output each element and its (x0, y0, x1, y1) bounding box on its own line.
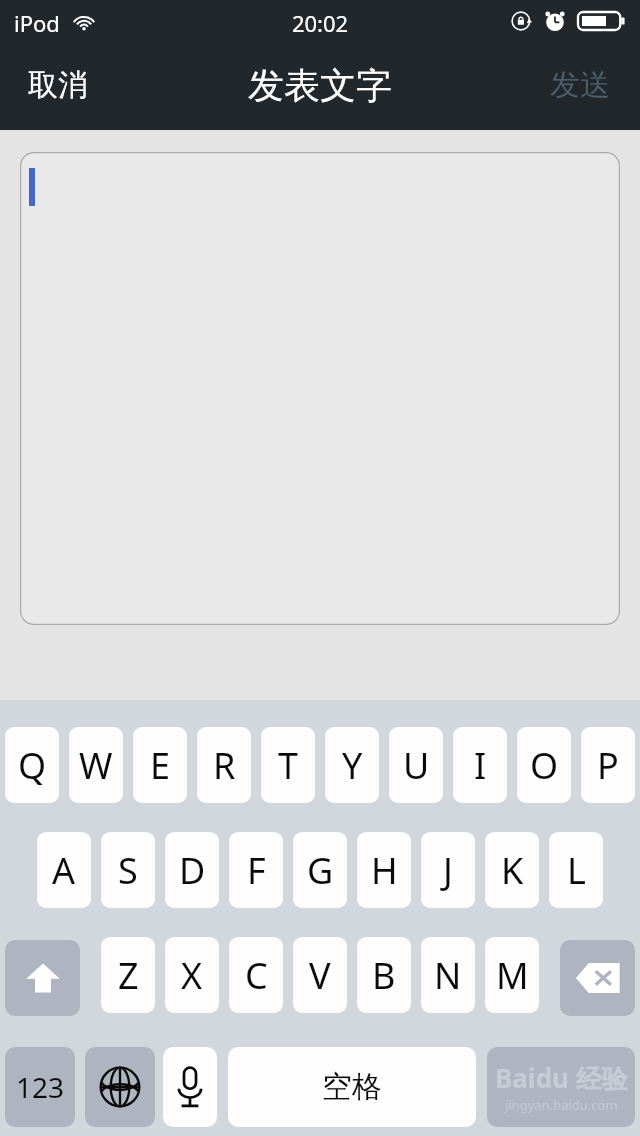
button[interactable]: Shift (5, 940, 80, 1016)
button[interactable]: C (229, 937, 283, 1013)
button[interactable]: T (261, 727, 315, 803)
staticText: S (118, 846, 138, 895)
staticText: D (179, 846, 206, 895)
button[interactable]: P (581, 727, 635, 803)
button[interactable]: L (549, 832, 603, 908)
staticText: R (213, 741, 236, 790)
staticText: iPod (14, 8, 60, 38)
button[interactable]: Backspace (560, 940, 635, 1016)
staticText: G (307, 846, 334, 895)
button[interactable]: Y (325, 727, 379, 803)
button[interactable]: I (453, 727, 507, 803)
staticText: K (501, 846, 524, 895)
staticText: jingyan.baidu.com (505, 1096, 618, 1114)
staticText: 20:02 (0, 8, 640, 38)
button[interactable]: E (133, 727, 187, 803)
button[interactable]: Dictation (163, 1047, 217, 1127)
button[interactable]: 取消 (8, 40, 108, 130)
button[interactable]: B (357, 937, 411, 1013)
staticText: A (52, 846, 76, 895)
staticText: J (443, 846, 453, 895)
staticText: P (597, 741, 619, 790)
button[interactable]: F (229, 832, 283, 908)
staticText: B (372, 951, 396, 1000)
staticText: L (567, 846, 586, 895)
button[interactable]: S (101, 832, 155, 908)
staticText: Q (18, 741, 47, 790)
button[interactable]: Q (5, 727, 59, 803)
button[interactable]: X (165, 937, 219, 1013)
staticText: Baidu 经验 (495, 1060, 628, 1096)
staticText: Y (342, 741, 363, 790)
staticText: O (530, 741, 559, 790)
staticText: N (434, 951, 462, 1000)
staticText: C (245, 951, 268, 1000)
button[interactable]: N (421, 937, 475, 1013)
button[interactable]: D (165, 832, 219, 908)
button[interactable]: Change keyboard (85, 1047, 155, 1127)
staticText: T (278, 741, 299, 790)
button[interactable]: A (37, 832, 91, 908)
button[interactable]: H (357, 832, 411, 908)
staticText: 123 (16, 1068, 65, 1106)
button[interactable]: O (517, 727, 571, 803)
button[interactable]: J (421, 832, 475, 908)
staticText: 空格 (322, 1068, 382, 1106)
staticText: W (79, 741, 113, 790)
staticText: 发表文字 (248, 63, 392, 108)
staticText: I (474, 741, 487, 790)
button[interactable]: Return (487, 1047, 635, 1127)
staticText: U (403, 741, 430, 790)
staticText: H (371, 846, 398, 895)
staticText: X (181, 951, 203, 1000)
button[interactable]: M (485, 937, 539, 1013)
button[interactable]: G (293, 832, 347, 908)
button[interactable]: 空格 (228, 1047, 476, 1127)
button[interactable] (20, 152, 620, 625)
button[interactable]: K (485, 832, 539, 908)
staticText: M (496, 951, 529, 1000)
staticText: E (150, 741, 171, 790)
button[interactable]: V (293, 937, 347, 1013)
staticText: 发送 (550, 66, 610, 104)
staticText: V (309, 951, 331, 1000)
button[interactable]: 123 (5, 1047, 75, 1127)
button[interactable]: W (69, 727, 123, 803)
button[interactable]: R (197, 727, 251, 803)
button[interactable]: U (389, 727, 443, 803)
button[interactable]: Z (101, 937, 155, 1013)
staticText: F (247, 846, 266, 895)
staticText: 取消 (28, 66, 88, 104)
staticText: Z (118, 951, 139, 1000)
button[interactable]: 发送 (528, 40, 632, 130)
